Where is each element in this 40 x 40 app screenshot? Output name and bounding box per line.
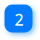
- staticText: 2: [14, 9, 23, 30]
- button[interactable]: 2: [4, 4, 32, 32]
